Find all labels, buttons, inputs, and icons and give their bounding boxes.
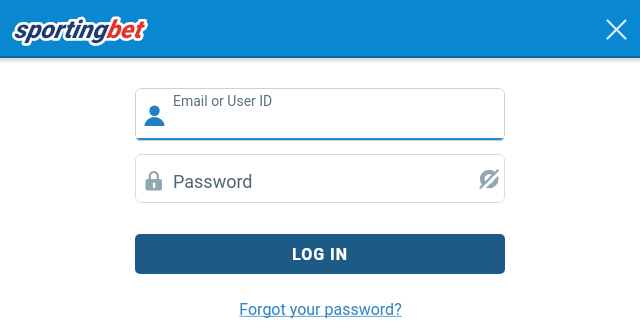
staticText: Password [173, 171, 253, 192]
button[interactable] [601, 14, 632, 45]
button[interactable]: sportingbet [14, 15, 142, 44]
button[interactable]: Email or User ID [135, 88, 505, 141]
button[interactable] [476, 166, 502, 192]
button[interactable]: Password [135, 154, 505, 203]
staticText: sportingbet [14, 15, 142, 44]
staticText: sportingbet [14, 15, 142, 44]
button[interactable]: LOG IN [135, 234, 505, 274]
staticText: LOG IN [292, 245, 349, 264]
button[interactable]: Forgot your password? [239, 300, 402, 319]
staticText: Email or User ID [173, 93, 273, 109]
